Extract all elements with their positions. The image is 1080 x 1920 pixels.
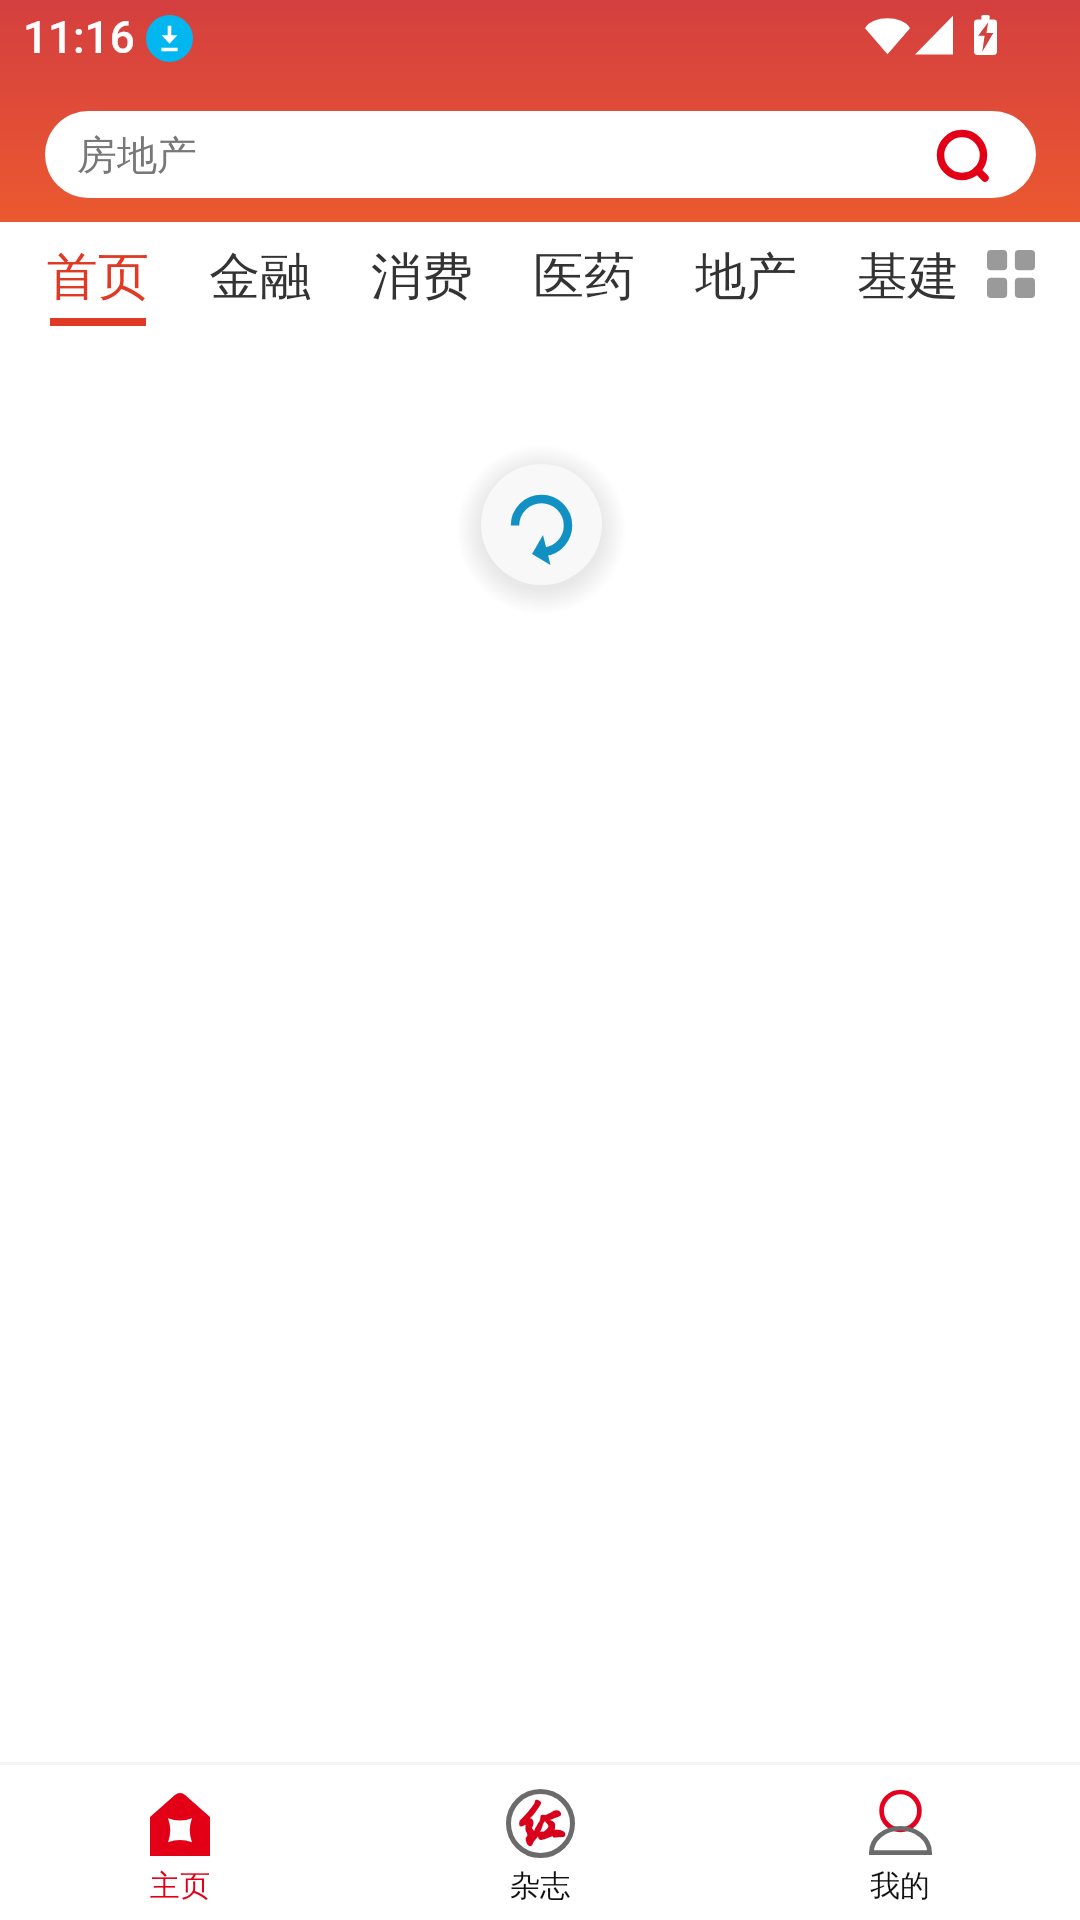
staticText: 金融 bbox=[209, 245, 311, 309]
button[interactable]: 主页 bbox=[0, 1765, 360, 1905]
staticText: 房地产 bbox=[77, 130, 197, 180]
staticText: 我的 bbox=[870, 1867, 930, 1905]
button[interactable]: 基建 bbox=[854, 222, 962, 334]
staticText: 消费 bbox=[371, 245, 473, 309]
button[interactable]: 消费 bbox=[368, 222, 476, 334]
staticText: 红 bbox=[513, 1794, 569, 1856]
button[interactable]: 房地产 bbox=[45, 111, 1036, 198]
staticText: 首页 bbox=[47, 245, 149, 309]
button[interactable]: 我的 bbox=[720, 1765, 1080, 1905]
button[interactable]: Search bbox=[916, 111, 986, 181]
button[interactable]: 红 bbox=[360, 1765, 720, 1905]
staticText: 杂志 bbox=[510, 1867, 570, 1905]
staticText: 医药 bbox=[533, 245, 635, 309]
button[interactable]: 金融 bbox=[206, 222, 314, 334]
staticText: 主页 bbox=[150, 1867, 210, 1905]
button[interactable]: 医药 bbox=[530, 222, 638, 334]
button[interactable]: 地产 bbox=[692, 222, 800, 334]
button[interactable]: 首页 bbox=[44, 222, 152, 334]
button[interactable]: All categories bbox=[975, 238, 1047, 310]
staticText: 地产 bbox=[695, 245, 797, 309]
staticText: 基建 bbox=[857, 245, 959, 309]
staticText: 11:16 bbox=[23, 12, 135, 64]
